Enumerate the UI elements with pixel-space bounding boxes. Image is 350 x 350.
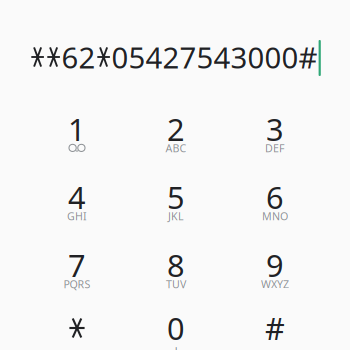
staticText: 8 bbox=[167, 245, 185, 285]
staticText: PQRS bbox=[63, 277, 90, 291]
staticText: 2 bbox=[167, 109, 185, 149]
button[interactable]: pound bbox=[225, 305, 324, 350]
button[interactable]: 1 bbox=[27, 106, 126, 174]
button[interactable]: 0 bbox=[126, 305, 225, 350]
button[interactable]: 3 bbox=[225, 106, 324, 174]
staticText: 9 bbox=[266, 245, 284, 285]
staticText: JKL bbox=[168, 209, 184, 223]
button[interactable]: 4 bbox=[27, 174, 126, 242]
staticText: MNO bbox=[262, 209, 288, 223]
staticText: ABC bbox=[165, 141, 186, 155]
staticText: GHI bbox=[67, 209, 87, 223]
button[interactable]: 5 bbox=[126, 174, 225, 242]
staticText: WXYZ bbox=[261, 277, 289, 291]
button[interactable]: star bbox=[27, 305, 126, 350]
staticText: 3 bbox=[266, 109, 284, 149]
staticText: # bbox=[265, 308, 285, 348]
staticText: 62 bbox=[62, 37, 96, 76]
button[interactable]: 8 bbox=[126, 242, 225, 310]
staticText: 1 bbox=[68, 109, 86, 149]
staticText: 0 bbox=[167, 308, 185, 348]
staticText: DEF bbox=[265, 141, 285, 155]
button[interactable]: 6 bbox=[225, 174, 324, 242]
staticText: 7 bbox=[68, 245, 86, 285]
staticText: 4 bbox=[68, 177, 86, 217]
button[interactable]: Dialled number **62*05427543000# bbox=[30, 37, 321, 76]
staticText: 6 bbox=[266, 177, 284, 217]
staticText: + bbox=[172, 341, 180, 350]
button[interactable]: 7 bbox=[27, 242, 126, 310]
button[interactable]: 9 bbox=[225, 242, 324, 310]
button[interactable]: 2 bbox=[126, 106, 225, 174]
staticText: 05427543000# bbox=[112, 37, 318, 76]
staticText: TUV bbox=[166, 277, 186, 291]
staticText: 5 bbox=[167, 177, 185, 217]
